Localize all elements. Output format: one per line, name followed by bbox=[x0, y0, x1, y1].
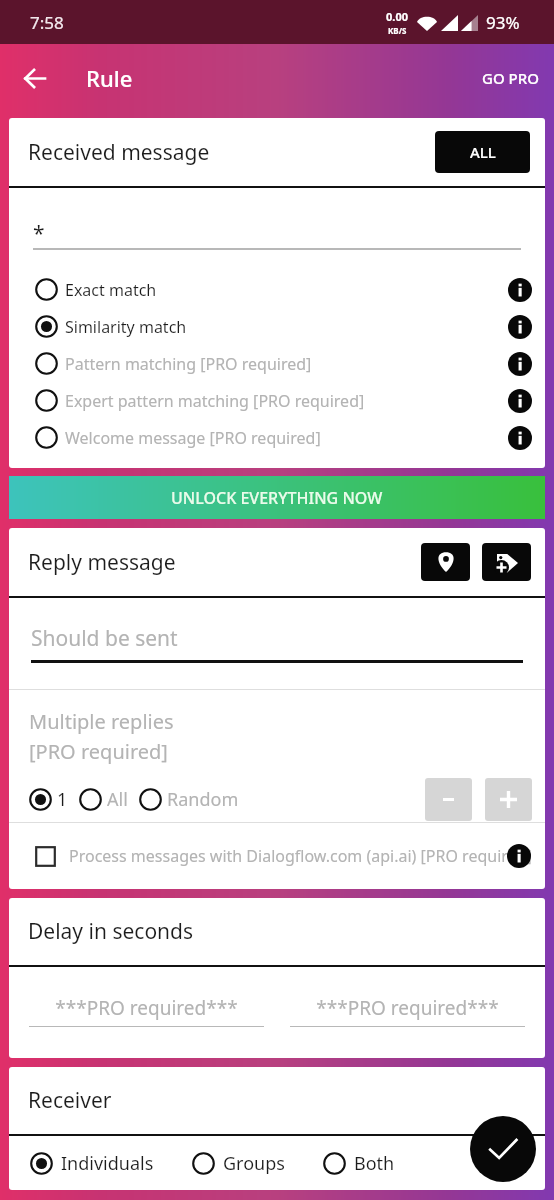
button[interactable]: Process messages with Dialogflow.com (ap… bbox=[9, 823, 545, 889]
staticText: Individuals bbox=[61, 1151, 154, 1176]
button[interactable]: UNLOCK EVERYTHING NOW bbox=[9, 476, 545, 519]
button[interactable]: Decrease bbox=[425, 778, 472, 821]
staticText: 7:58 bbox=[30, 11, 64, 34]
staticText: Welcome message [PRO required] bbox=[65, 427, 321, 449]
button[interactable]: All bbox=[79, 787, 128, 812]
button[interactable]: Insert tag bbox=[482, 543, 531, 581]
button[interactable]: Random bbox=[139, 787, 239, 812]
button[interactable]: Pattern matching [PRO required] bbox=[35, 345, 532, 382]
button[interactable]: Info bbox=[508, 389, 532, 413]
staticText: Process messages with Dialogflow.com (ap… bbox=[69, 845, 532, 867]
staticText: UNLOCK EVERYTHING NOW bbox=[171, 487, 383, 509]
staticText: 0.00 bbox=[386, 9, 408, 24]
staticText: Pattern matching [PRO required] bbox=[65, 353, 312, 375]
staticText: ***PRO required*** bbox=[290, 995, 525, 1021]
button[interactable]: Similarity match bbox=[35, 308, 532, 345]
staticText: Should be sent bbox=[31, 624, 178, 653]
button[interactable]: Back bbox=[13, 57, 55, 99]
button[interactable]: Info bbox=[508, 352, 532, 376]
staticText: Groups bbox=[223, 1151, 285, 1176]
staticText: KB/S bbox=[388, 25, 407, 36]
staticText: Both bbox=[354, 1151, 395, 1176]
staticText: Multiple replies bbox=[29, 708, 174, 735]
button[interactable]: Insert location bbox=[421, 543, 470, 581]
button[interactable]: Increase bbox=[485, 778, 532, 821]
button[interactable]: Expert pattern matching [PRO required] bbox=[35, 382, 532, 419]
staticText: All bbox=[107, 787, 128, 812]
staticText: Reply message bbox=[28, 548, 176, 577]
button[interactable]: GO PRO bbox=[467, 52, 554, 104]
staticText: Receiver bbox=[28, 1086, 112, 1115]
button[interactable]: Exact match bbox=[35, 271, 532, 308]
staticText: Rule bbox=[86, 63, 133, 93]
button[interactable]: Info bbox=[507, 844, 531, 868]
staticText: 1 bbox=[57, 787, 68, 812]
button[interactable]: Both bbox=[323, 1151, 395, 1176]
staticText: Exact match bbox=[65, 279, 157, 301]
staticText: GO PRO bbox=[482, 68, 539, 88]
button[interactable]: 1 bbox=[29, 787, 68, 812]
staticText: Delay in seconds bbox=[28, 917, 194, 946]
button[interactable]: ALL bbox=[435, 131, 530, 173]
button[interactable]: Welcome message [PRO required] bbox=[35, 419, 532, 456]
button[interactable]: Info bbox=[508, 315, 532, 339]
staticText: Received message bbox=[28, 138, 210, 167]
button[interactable]: Save rule bbox=[470, 1116, 536, 1182]
button[interactable]: Individuals bbox=[30, 1151, 154, 1176]
staticText: * bbox=[33, 219, 45, 248]
staticText: Similarity match bbox=[65, 316, 187, 338]
button[interactable]: Groups bbox=[192, 1151, 285, 1176]
staticText: 93% bbox=[486, 11, 520, 34]
button[interactable]: Info bbox=[508, 278, 532, 302]
staticText: [PRO required] bbox=[29, 738, 168, 765]
staticText: Random bbox=[167, 787, 239, 812]
button[interactable]: Info bbox=[508, 426, 532, 450]
staticText: Expert pattern matching [PRO required] bbox=[65, 390, 365, 412]
staticText: ***PRO required*** bbox=[29, 995, 264, 1021]
staticText: ALL bbox=[470, 142, 496, 162]
